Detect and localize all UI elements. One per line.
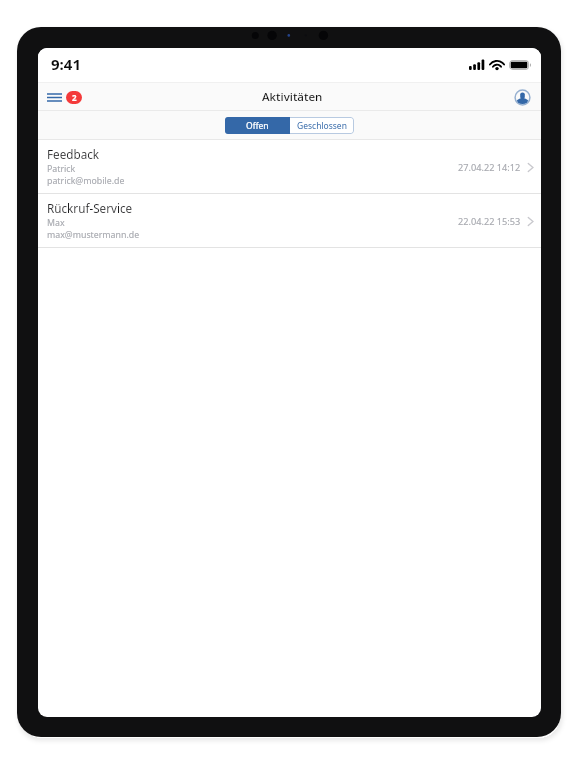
staticText: Max bbox=[47, 217, 65, 229]
button[interactable]: Feedback bbox=[38, 140, 541, 194]
staticText: 2 bbox=[72, 92, 77, 103]
staticText: 27.04.22 14:12 bbox=[458, 161, 521, 174]
staticText: 22.04.22 15:53 bbox=[458, 215, 521, 228]
button[interactable]: Rückruf-Service bbox=[38, 194, 541, 248]
button[interactable]: Menu bbox=[43, 87, 86, 108]
staticText: Rückruf-Service bbox=[47, 200, 133, 216]
staticText: Geschlossen bbox=[297, 120, 347, 132]
staticText: Feedback bbox=[47, 146, 100, 162]
staticText: Offen bbox=[246, 120, 269, 132]
button[interactable]: Offen bbox=[225, 117, 290, 134]
button[interactable]: Profile bbox=[512, 87, 533, 108]
button[interactable]: Geschlossen bbox=[290, 117, 354, 134]
staticText: Patrick bbox=[47, 163, 76, 175]
staticText: Aktivitäten bbox=[262, 89, 323, 105]
staticText: 9:41 bbox=[51, 54, 81, 74]
staticText: max@mustermann.de bbox=[47, 229, 140, 241]
staticText: patrick@mobile.de bbox=[47, 175, 125, 187]
